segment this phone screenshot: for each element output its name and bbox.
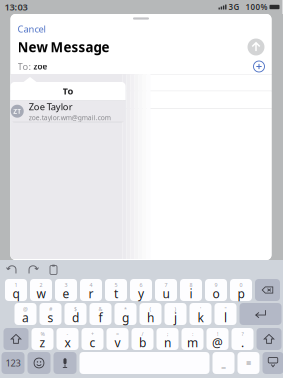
button[interactable] [53, 352, 76, 374]
button[interactable] [3, 328, 28, 350]
staticText: $ [74, 305, 77, 313]
staticText: 2 [39, 281, 42, 289]
staticText: h [147, 309, 154, 325]
button[interactable] [256, 328, 281, 350]
staticText: m [187, 334, 198, 350]
button[interactable] [255, 279, 280, 301]
staticText: Cancel [17, 23, 45, 35]
staticText: t [114, 285, 118, 301]
staticText: 3 [64, 281, 67, 289]
staticText: 13:03 [4, 1, 27, 13]
button[interactable]: 8 [180, 279, 202, 301]
staticText: @ [212, 334, 223, 350]
button[interactable]: : [181, 328, 203, 350]
staticText: . [241, 334, 244, 350]
staticText: 6 [139, 281, 142, 289]
button[interactable] [27, 352, 50, 374]
button[interactable]: ? [231, 328, 253, 350]
button[interactable]: / [131, 328, 153, 350]
staticText: j [174, 309, 177, 325]
staticText: 1 [14, 281, 17, 289]
button[interactable]: 2 [30, 279, 52, 301]
button[interactable]: + [81, 328, 103, 350]
staticText: + [91, 330, 94, 338]
button[interactable]: & [89, 303, 111, 325]
staticText: zoe [31, 61, 47, 72]
staticText: - [66, 330, 68, 338]
staticText: y [138, 285, 144, 301]
button[interactable]: 1 [5, 279, 27, 301]
button[interactable]: 5 [105, 279, 127, 301]
staticText: ( [149, 305, 151, 313]
staticText: New Message [17, 38, 109, 56]
staticText: 0 [239, 281, 242, 289]
staticText: g [122, 309, 129, 325]
button[interactable] [262, 352, 283, 374]
button[interactable]: Add contact [253, 61, 264, 72]
button[interactable]: $ [64, 303, 86, 325]
button[interactable]: ( [139, 303, 161, 325]
staticText: * [124, 305, 127, 313]
button[interactable]: 6 [130, 279, 152, 301]
staticText: % [40, 330, 44, 338]
button[interactable]: # [39, 303, 61, 325]
button[interactable]: Paste [46, 262, 60, 276]
button[interactable]: ' [189, 303, 211, 325]
staticText: @ [23, 305, 28, 313]
button[interactable]: ! [206, 328, 228, 350]
button[interactable] [239, 303, 281, 325]
staticText: To [62, 85, 73, 97]
staticText: / [141, 330, 143, 338]
staticText: 5 [114, 281, 117, 289]
staticText: ' [200, 305, 201, 313]
staticText: : [192, 330, 193, 338]
staticText: w [36, 285, 45, 301]
button[interactable]: 4 [80, 279, 102, 301]
staticText: 7 [164, 281, 167, 289]
button[interactable]: _ [212, 352, 234, 374]
button[interactable]: 0 [230, 279, 252, 301]
staticText: p [237, 285, 244, 301]
button[interactable]: ZT [8, 101, 128, 122]
staticText: ZT [13, 107, 21, 116]
staticText: 8 [189, 281, 192, 289]
staticText: To: [17, 60, 31, 73]
button[interactable]: 123 [1, 352, 24, 374]
staticText: 4 [89, 281, 92, 289]
button[interactable]: @ [14, 303, 36, 325]
staticText: c [89, 334, 95, 350]
button[interactable]: 9 [205, 279, 227, 301]
staticText: r [88, 285, 93, 301]
button[interactable]: * [114, 303, 136, 325]
staticText: Subject: [17, 95, 47, 105]
staticText: a [22, 309, 29, 325]
button[interactable]: 3 [55, 279, 77, 301]
button[interactable]: = [106, 328, 128, 350]
staticText: = [246, 357, 251, 369]
staticText: f [98, 309, 102, 325]
staticText: z [39, 334, 45, 350]
button[interactable]: % [31, 328, 53, 350]
button[interactable]: Send [247, 38, 264, 55]
button[interactable]: Undo [4, 262, 19, 277]
button[interactable]: 7 [155, 279, 177, 301]
button[interactable]: = [237, 352, 259, 374]
staticText: e [62, 285, 69, 301]
staticText: 3G 100% [226, 2, 267, 12]
staticText: k [197, 309, 203, 325]
button[interactable]: " [214, 303, 236, 325]
staticText: ; [167, 330, 168, 338]
staticText: _ [221, 357, 225, 369]
button[interactable]: Cancel [15, 22, 47, 36]
button[interactable]: ) [164, 303, 186, 325]
staticText: n [164, 334, 171, 350]
staticText: # [49, 305, 52, 313]
staticText: d [72, 309, 79, 325]
button[interactable] [79, 352, 209, 374]
staticText: ? [241, 330, 243, 338]
button[interactable]: - [56, 328, 78, 350]
button[interactable]: ; [156, 328, 178, 350]
button[interactable]: Redo [25, 262, 40, 277]
staticText: b [139, 334, 146, 350]
staticText: 9 [214, 281, 217, 289]
